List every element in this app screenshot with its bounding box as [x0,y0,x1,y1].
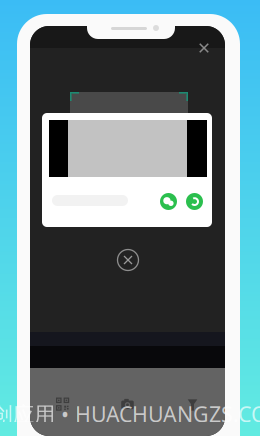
button[interactable]: Call [186,193,203,210]
button[interactable]: Dismiss [111,243,145,277]
button[interactable]: Close [190,34,218,62]
button[interactable]: Scan QR code [30,368,95,436]
staticText: 创应用 • HUACHUANGZS.COM [0,400,260,428]
button[interactable]: Camera [95,368,160,436]
button[interactable]: Flashlight [160,368,225,436]
button[interactable]: Share to WeChat [160,193,177,210]
